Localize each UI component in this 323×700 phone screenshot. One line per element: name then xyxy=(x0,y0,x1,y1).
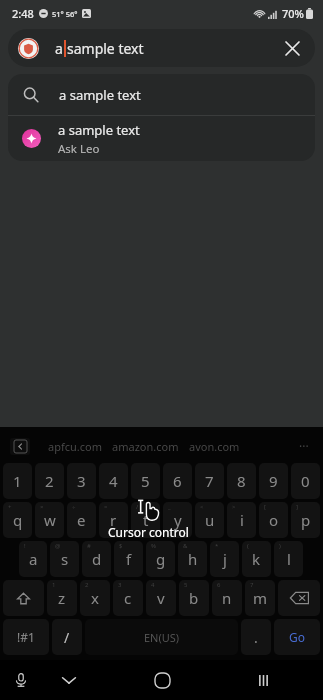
button[interactable]: a sample text xyxy=(8,74,315,115)
staticText: k xyxy=(252,549,261,569)
button[interactable]: 7 xyxy=(245,580,275,616)
staticText: 5 xyxy=(141,471,150,491)
button[interactable]: Clear search xyxy=(275,31,309,65)
button[interactable]: EN(US) xyxy=(85,619,238,655)
button[interactable]: 5 xyxy=(131,463,160,499)
button[interactable]: ! xyxy=(19,541,47,577)
staticText: u xyxy=(205,510,215,530)
button[interactable]: Voice input xyxy=(6,665,36,695)
staticText: 2 xyxy=(45,471,54,491)
staticText: a sample text xyxy=(59,86,141,104)
staticText: 5 xyxy=(184,581,188,589)
button[interactable]: 9 xyxy=(259,463,288,499)
button[interactable]: Recent apps xyxy=(245,662,281,698)
button[interactable]: × xyxy=(35,502,64,538)
staticText: z xyxy=(58,588,66,608)
staticText: 7 xyxy=(205,471,214,491)
button[interactable]: amazon.com xyxy=(112,439,179,454)
button[interactable]: > xyxy=(227,502,256,538)
button[interactable]: 5 xyxy=(179,580,209,616)
button[interactable]: 1 xyxy=(3,463,32,499)
button[interactable]: 8 xyxy=(227,463,256,499)
button[interactable]: Backspace xyxy=(278,580,320,616)
button[interactable]: 4 xyxy=(146,580,176,616)
button[interactable]: $ xyxy=(114,541,143,577)
staticText: # xyxy=(87,542,91,550)
button[interactable]: 1 xyxy=(47,580,77,616)
button[interactable]: * xyxy=(210,541,239,577)
staticText: 6 xyxy=(217,581,221,589)
staticText: 2 xyxy=(85,581,89,589)
staticText: a sample text xyxy=(58,121,140,139)
button[interactable]: Hide keyboard xyxy=(52,663,86,697)
button[interactable]: ] xyxy=(291,502,320,538)
staticText: sample text xyxy=(67,39,144,58)
button[interactable]: / xyxy=(131,502,160,538)
staticText: r xyxy=(110,510,117,530)
staticText: x xyxy=(91,588,99,608)
staticText: 3 xyxy=(118,581,122,589)
button[interactable]: ÷ xyxy=(67,502,96,538)
staticText: f xyxy=(126,549,132,569)
staticText: w xyxy=(44,510,56,530)
button[interactable]: @ xyxy=(50,541,79,577)
staticText: 8 xyxy=(237,471,246,491)
button[interactable]: 7 xyxy=(195,463,224,499)
button[interactable]: 3 xyxy=(67,463,96,499)
staticText: 1 xyxy=(52,581,56,589)
button[interactable]: 3 xyxy=(113,580,143,616)
button[interactable]: avon.com xyxy=(189,439,240,454)
button[interactable]: . xyxy=(241,619,271,655)
staticText: avon.com xyxy=(189,439,240,454)
button[interactable]: 0 xyxy=(291,463,320,499)
staticText: $ xyxy=(119,542,123,550)
staticText: + xyxy=(8,503,12,511)
staticText: 6 xyxy=(173,471,182,491)
button[interactable]: % xyxy=(146,541,175,577)
button[interactable]: _ xyxy=(163,502,192,538)
staticText: Cursor control xyxy=(108,524,189,540)
button[interactable]: Clipboard xyxy=(10,438,30,455)
button[interactable]: ) xyxy=(274,541,303,577)
button[interactable]: Shift xyxy=(3,580,44,616)
staticText: l xyxy=(287,549,291,569)
button[interactable]: Go xyxy=(274,619,320,655)
button[interactable]: a sample text xyxy=(8,116,315,161)
button[interactable]: 4 xyxy=(99,463,128,499)
staticText: & xyxy=(183,542,188,550)
button[interactable]: a xyxy=(8,29,315,67)
button[interactable]: & xyxy=(178,541,207,577)
staticText: 9 xyxy=(269,471,278,491)
button[interactable]: ( xyxy=(242,541,271,577)
button[interactable]: / xyxy=(52,619,82,655)
button[interactable]: 6 xyxy=(163,463,192,499)
staticText: ··· xyxy=(299,438,309,454)
staticText: Ask Leo xyxy=(58,141,100,157)
staticText: j xyxy=(223,549,227,569)
button[interactable]: !#1 xyxy=(3,619,49,655)
staticText: * xyxy=(215,542,219,550)
button[interactable]: < xyxy=(195,502,224,538)
staticText: < xyxy=(200,503,204,511)
button[interactable]: [ xyxy=(259,502,288,538)
button[interactable]: + xyxy=(3,502,32,538)
staticText: = xyxy=(104,503,108,511)
button[interactable]: = xyxy=(99,502,128,538)
staticText: 0 xyxy=(301,471,310,491)
staticText: × xyxy=(40,503,44,511)
staticText: ( xyxy=(247,542,249,550)
staticText: 3 xyxy=(77,471,86,491)
staticText: @ xyxy=(55,542,61,550)
button[interactable]: 2 xyxy=(35,463,64,499)
button[interactable]: 2 xyxy=(80,580,110,616)
button[interactable]: # xyxy=(82,541,111,577)
staticText: a xyxy=(55,39,63,58)
staticText: t xyxy=(143,510,149,530)
staticText: / xyxy=(136,503,139,511)
button[interactable]: apfcu.com xyxy=(48,439,102,454)
button[interactable]: Home xyxy=(142,660,182,700)
staticText: 4 xyxy=(151,581,155,589)
staticText: y xyxy=(174,510,182,530)
button[interactable]: 6 xyxy=(212,580,242,616)
button[interactable]: More suggestions xyxy=(295,437,313,455)
